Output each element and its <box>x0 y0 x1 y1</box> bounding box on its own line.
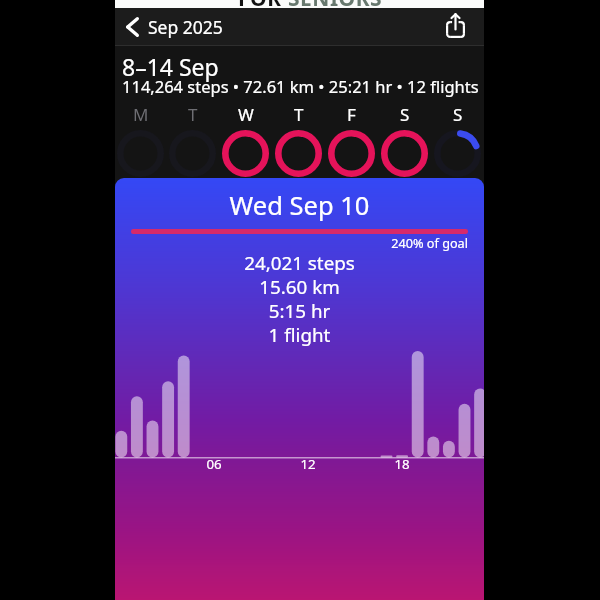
staticText: F <box>347 103 356 126</box>
staticText: T <box>188 103 198 126</box>
staticText: 24,021 steps <box>115 250 484 276</box>
staticText: Sep 2025 <box>148 15 223 39</box>
button[interactable]: T <box>272 103 325 183</box>
staticText: W <box>238 103 254 126</box>
staticText: Wed Sep 10 <box>115 188 484 223</box>
button[interactable]: Sep 2025 <box>115 10 233 44</box>
staticText: 18 <box>390 455 414 473</box>
staticText: S <box>453 103 463 126</box>
staticText: T <box>294 103 304 126</box>
button[interactable]: W <box>219 103 272 183</box>
button[interactable]: F <box>325 103 378 183</box>
staticText: 5:15 hr <box>115 298 484 324</box>
button[interactable]: M <box>114 103 167 183</box>
button[interactable]: S <box>378 103 431 183</box>
staticText: 06 <box>202 455 226 473</box>
button[interactable]: Share <box>434 11 484 44</box>
staticText: 15.60 km <box>115 274 484 300</box>
staticText: 8–14 Sep <box>122 51 219 82</box>
staticText: 1 flight <box>115 322 484 348</box>
staticText: SENIORS <box>288 0 383 13</box>
staticText: 114,264 steps • 72.61 km • 25:21 hr • 12… <box>122 75 479 97</box>
staticText: FOR <box>238 0 288 13</box>
staticText: 12 <box>296 455 320 473</box>
staticText: 240% of goal <box>115 234 468 251</box>
button[interactable]: T <box>166 103 219 183</box>
staticText: M <box>133 103 149 126</box>
button[interactable]: S <box>431 103 484 183</box>
staticText: S <box>400 103 410 126</box>
